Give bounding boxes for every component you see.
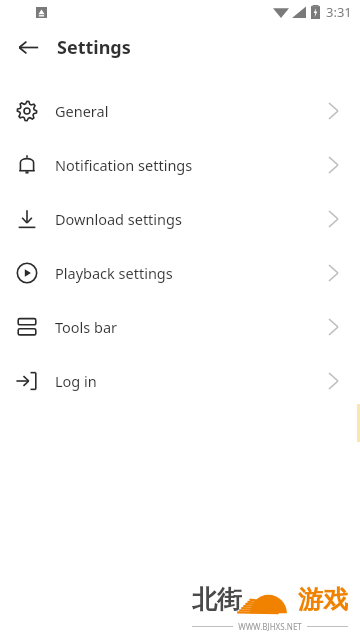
staticText: 3:31 bbox=[326, 3, 352, 21]
staticText: Settings bbox=[57, 35, 131, 60]
staticText: Download settings bbox=[55, 209, 182, 229]
staticText: 游戏 bbox=[298, 584, 348, 615]
staticText: Playback settings bbox=[55, 263, 173, 283]
staticText: Notification settings bbox=[55, 155, 193, 175]
button[interactable]: Tools bar bbox=[0, 300, 360, 354]
staticText: WWW.BJHXS.NET bbox=[238, 621, 302, 632]
button[interactable]: Notification settings bbox=[0, 138, 360, 192]
button[interactable]: Back bbox=[10, 29, 46, 65]
button[interactable]: Log in bbox=[0, 354, 360, 408]
button[interactable]: Playback settings bbox=[0, 246, 360, 300]
staticText: Log in bbox=[55, 371, 97, 391]
staticText: Tools bar bbox=[55, 317, 118, 337]
staticText: General bbox=[55, 101, 109, 121]
button[interactable]: Download settings bbox=[0, 192, 360, 246]
button[interactable]: General bbox=[0, 84, 360, 138]
staticText: 北街 bbox=[192, 584, 242, 615]
